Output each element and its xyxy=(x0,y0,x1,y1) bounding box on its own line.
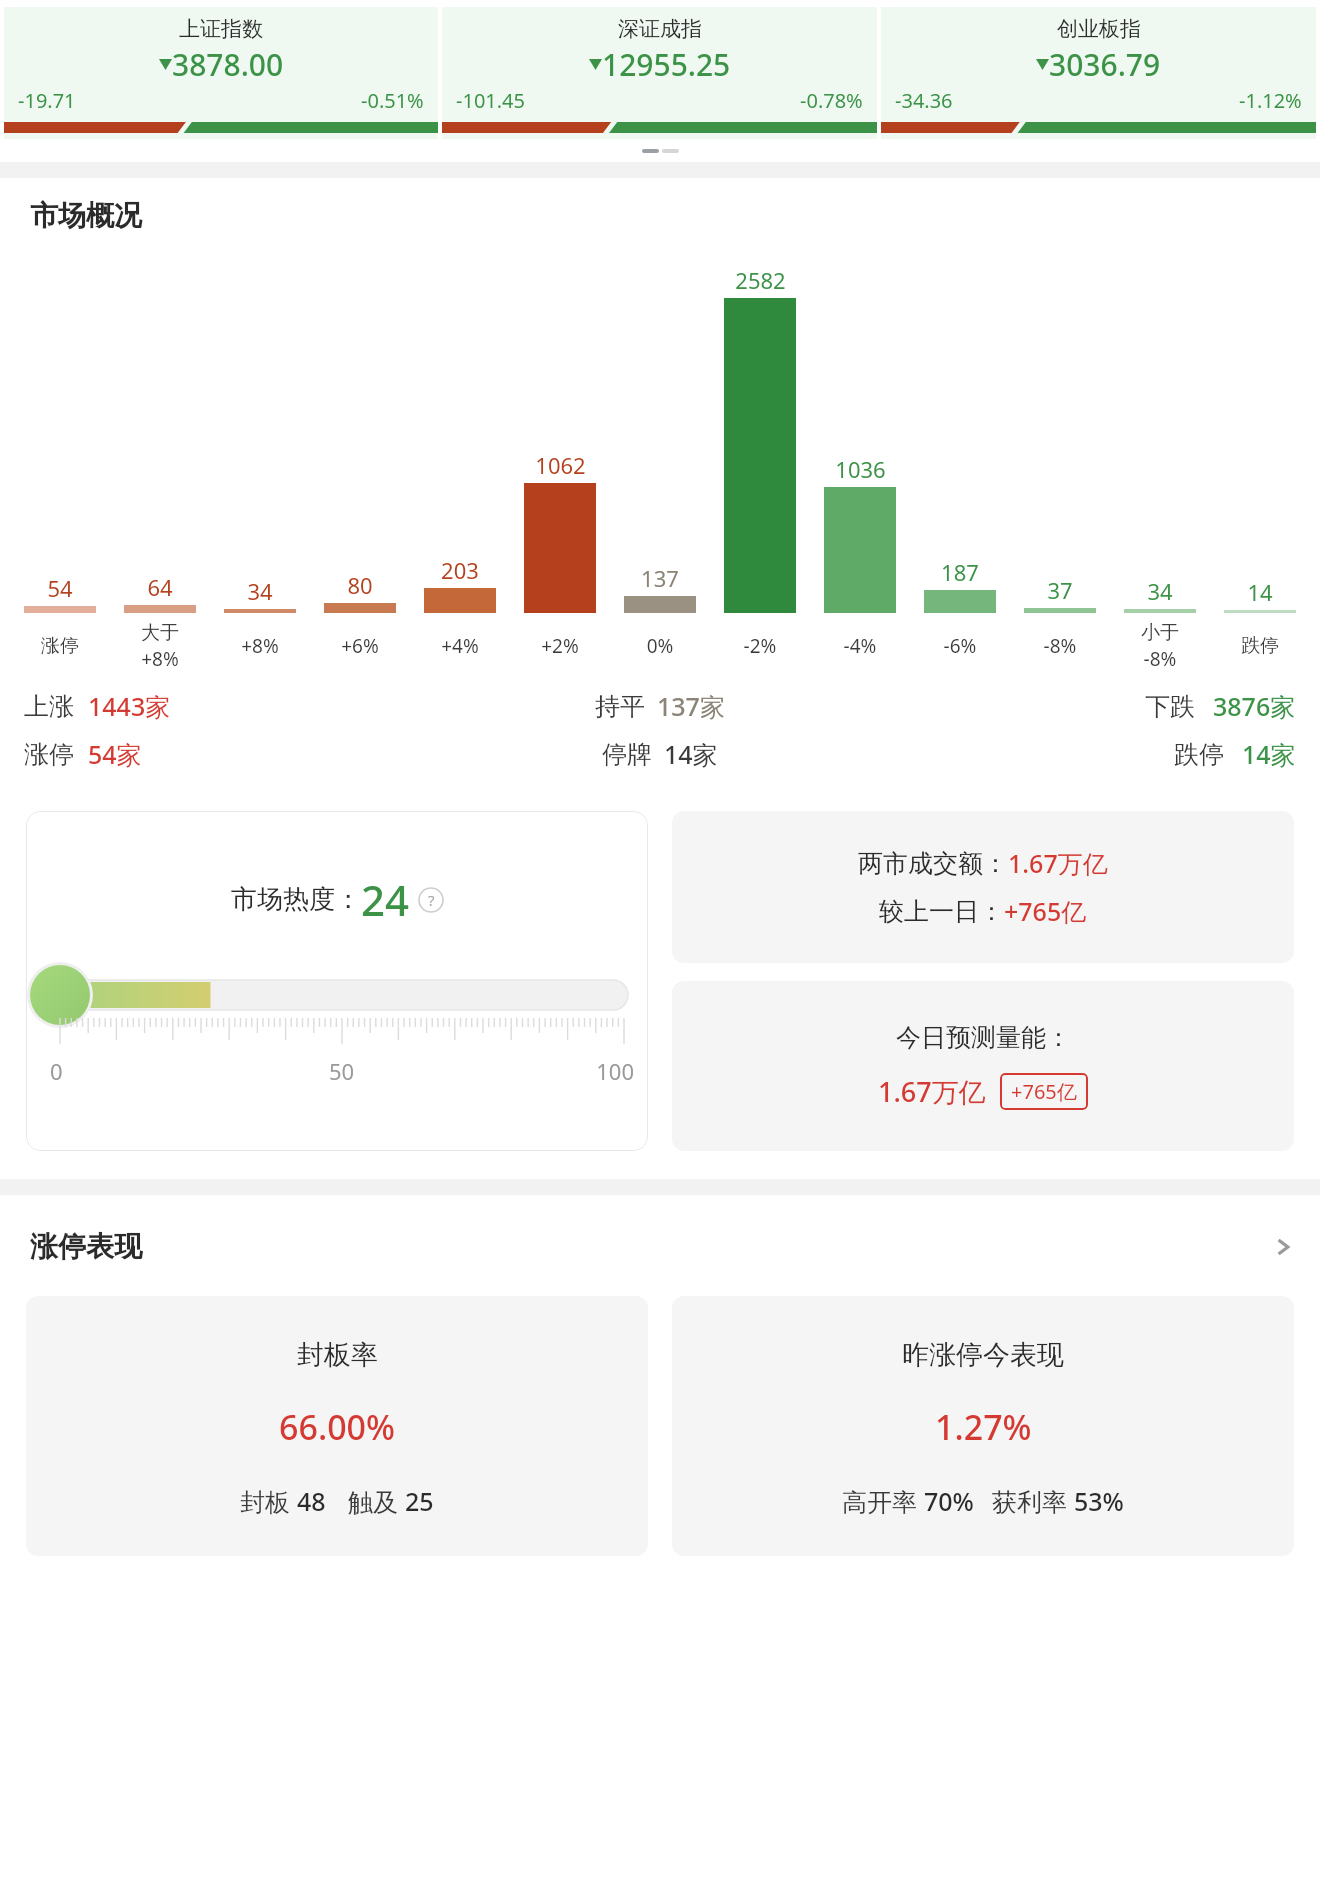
staticText: +765亿 xyxy=(1004,894,1087,928)
staticText: 涨停 xyxy=(24,739,74,770)
staticText: -34.36 xyxy=(895,87,953,114)
button[interactable]: 市场热度： xyxy=(26,811,648,1151)
staticText: 66.00% xyxy=(279,1404,396,1450)
button[interactable]: 两市成交额： xyxy=(672,811,1294,963)
button[interactable]: 涨停表现 xyxy=(0,1229,1320,1264)
staticText: 14家 xyxy=(1242,737,1296,771)
staticText: 53% xyxy=(1074,1484,1124,1518)
staticText: 小于 -8% xyxy=(1110,621,1210,672)
staticText: 14家 xyxy=(664,737,718,771)
staticText: -1.12% xyxy=(1239,87,1302,114)
staticText: 137家 xyxy=(657,689,725,723)
staticText: 64 xyxy=(147,572,173,602)
staticText: 两市成交额： xyxy=(858,848,1008,879)
staticText: -8% xyxy=(1010,633,1110,659)
staticText: -0.51% xyxy=(361,87,424,114)
staticText: -19.71 xyxy=(18,87,76,114)
staticText: 今日预测量能： xyxy=(896,1022,1071,1053)
staticText: 37 xyxy=(1047,575,1073,605)
button[interactable]: 昨涨停今表现 xyxy=(672,1296,1294,1556)
staticText: 跌停 xyxy=(1174,739,1224,770)
staticText: 137 xyxy=(641,563,679,593)
staticText: 市场热度： xyxy=(231,883,361,916)
staticText: 跌停 xyxy=(1210,634,1310,658)
staticText: 34 xyxy=(1147,576,1173,606)
staticText: 24 xyxy=(361,871,410,928)
button[interactable]: 今日预测量能： xyxy=(672,981,1294,1151)
staticText: 3876家 xyxy=(1213,689,1296,723)
staticText: 12955.25 xyxy=(602,44,731,85)
staticText: 34 xyxy=(247,576,273,606)
staticText: 高开率 xyxy=(842,1484,924,1518)
staticText: 上证指数 xyxy=(179,16,263,42)
staticText: 54 xyxy=(47,573,73,603)
staticText: 0 xyxy=(50,1056,244,1086)
staticText: 1443家 xyxy=(88,689,171,723)
staticText: -101.45 xyxy=(456,87,525,114)
staticText: 50 xyxy=(244,1056,439,1086)
button[interactable]: 上证指数 xyxy=(4,7,438,139)
button[interactable]: 深证成指 xyxy=(442,7,877,139)
staticText: -2% xyxy=(710,633,810,659)
staticText: 70% xyxy=(924,1484,974,1518)
staticText: 涨停 xyxy=(10,634,110,658)
staticText: 48 xyxy=(297,1484,326,1518)
staticText: 涨停表现 xyxy=(30,1229,142,1264)
staticText: 创业板指 xyxy=(1057,16,1141,42)
staticText: 昨涨停今表现 xyxy=(902,1338,1064,1372)
staticText: 深证成指 xyxy=(618,16,702,42)
staticText: 下跌 xyxy=(1145,691,1195,722)
staticText: 3878.00 xyxy=(172,44,284,85)
button[interactable]: 说明 xyxy=(418,887,444,913)
staticText: -0.78% xyxy=(800,87,863,114)
staticText: +4% xyxy=(410,633,510,659)
staticText: 上涨 xyxy=(24,691,74,722)
staticText: +6% xyxy=(310,633,410,659)
staticText: 203 xyxy=(441,555,479,585)
staticText: 1036 xyxy=(835,454,886,484)
staticText: 3036.79 xyxy=(1049,44,1161,85)
staticText: 14 xyxy=(1247,577,1273,607)
staticText: 停牌 xyxy=(602,739,652,770)
staticText: +8% xyxy=(210,633,310,659)
button[interactable]: 创业板指 xyxy=(881,7,1316,139)
button[interactable]: 封板率 xyxy=(26,1296,648,1556)
staticText: 187 xyxy=(941,557,979,587)
other: 更多 xyxy=(1272,1236,1294,1258)
staticText: 封板 xyxy=(240,1484,297,1518)
staticText: 80 xyxy=(347,570,373,600)
staticText: 1062 xyxy=(535,450,586,480)
staticText: 0% xyxy=(610,633,710,659)
staticText: +765亿 xyxy=(1011,1078,1077,1105)
staticText: 市场概况 xyxy=(30,198,142,233)
staticText: 100 xyxy=(439,1056,634,1086)
staticText: 1.67万亿 xyxy=(1008,846,1108,880)
staticText: -4% xyxy=(810,633,910,659)
staticText: 持平 xyxy=(595,691,645,722)
staticText: 2582 xyxy=(735,265,786,295)
staticText: 大于 +8% xyxy=(110,621,210,672)
staticText: 25 xyxy=(405,1484,434,1518)
staticText: 54家 xyxy=(88,737,142,771)
staticText: 触及 xyxy=(348,1484,405,1518)
staticText: 较上一日： xyxy=(879,896,1004,927)
staticText: 封板率 xyxy=(297,1338,378,1372)
staticText: 1.67万亿 xyxy=(878,1073,986,1110)
staticText: -6% xyxy=(910,633,1010,659)
staticText: 1.27% xyxy=(935,1404,1032,1450)
staticText: ? xyxy=(428,890,435,910)
staticText: +2% xyxy=(510,633,610,659)
staticText: 获利率 xyxy=(992,1484,1074,1518)
